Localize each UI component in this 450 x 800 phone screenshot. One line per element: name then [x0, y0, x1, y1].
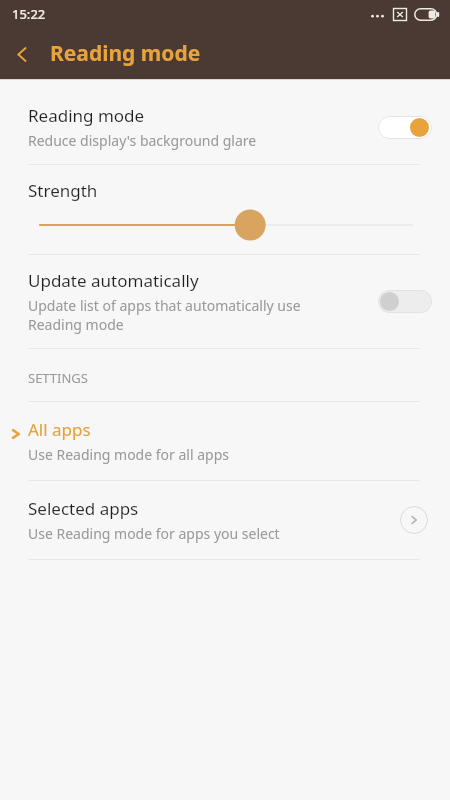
other: Open selected apps [400, 506, 428, 534]
staticText: Update automatically [28, 269, 199, 292]
staticText: Strength [28, 179, 98, 202]
staticText: 15:22 [12, 5, 46, 23]
staticText: All apps [28, 418, 91, 441]
button[interactable]: Strength slider [0, 208, 450, 242]
button[interactable]: Toggle on [378, 116, 432, 139]
button[interactable]: Strength [0, 165, 450, 250]
button[interactable]: Back [0, 32, 44, 76]
staticText: SETTINGS [28, 369, 88, 387]
staticText: Use Reading mode for apps you select [28, 524, 280, 543]
staticText: Reading mode [50, 39, 201, 68]
button[interactable]: Update automatically [0, 255, 450, 348]
button[interactable]: Reading mode [0, 90, 450, 164]
staticText: Reading mode [28, 104, 145, 127]
staticText: Selected apps [28, 497, 139, 520]
button[interactable]: Selected apps [0, 481, 450, 559]
staticText: Use Reading mode for all apps [28, 445, 229, 464]
button[interactable]: All apps [0, 402, 450, 480]
button[interactable]: Toggle off [378, 290, 432, 313]
staticText: Update list of apps that automatically u… [28, 296, 301, 334]
staticText: Reduce display's background glare [28, 131, 257, 150]
